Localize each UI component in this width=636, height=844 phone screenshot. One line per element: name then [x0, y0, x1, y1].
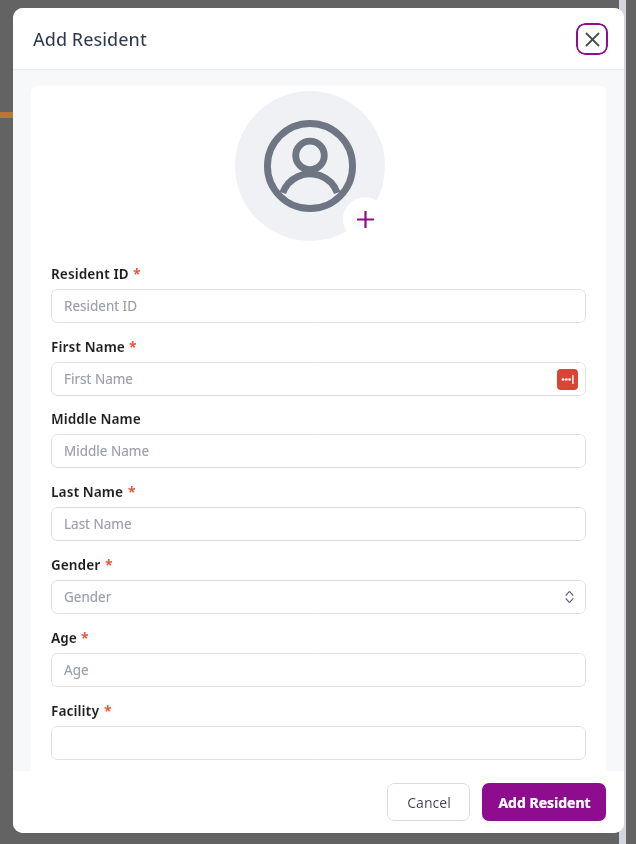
button[interactable]: Gender — [51, 580, 586, 614]
staticText: * — [81, 628, 89, 647]
button[interactable]: Cancel — [387, 783, 470, 821]
staticText: First Name — [51, 338, 125, 356]
button[interactable]: Close — [576, 23, 608, 55]
staticText: Last Name — [51, 483, 124, 501]
staticText: Resident ID — [64, 297, 138, 315]
staticText: Add Resident — [498, 793, 591, 812]
button[interactable]: Add Resident — [482, 783, 606, 821]
button[interactable]: Resident ID — [51, 289, 586, 323]
staticText: * — [133, 264, 141, 283]
button[interactable]: Profile photo — [235, 91, 385, 241]
staticText: * — [104, 701, 112, 720]
staticText: Last Name — [64, 515, 132, 533]
staticText: Add Resident — [33, 27, 147, 52]
button[interactable]: Add photo — [343, 197, 387, 241]
button[interactable]: Middle Name — [51, 434, 586, 468]
staticText: * — [129, 337, 137, 356]
staticText: Middle Name — [64, 442, 150, 460]
staticText: First Name — [64, 370, 133, 388]
staticText: Resident ID — [51, 265, 129, 283]
staticText: * — [105, 555, 113, 574]
button[interactable] — [51, 726, 586, 760]
staticText: Gender — [51, 556, 101, 574]
button[interactable]: First Name — [51, 362, 586, 396]
staticText: Age — [64, 661, 89, 679]
button[interactable]: Last Name — [51, 507, 586, 541]
staticText: * — [128, 482, 136, 501]
staticText: Age — [51, 629, 77, 647]
button[interactable]: Age — [51, 653, 586, 687]
staticText: Facility — [51, 702, 100, 720]
staticText: Middle Name — [51, 410, 141, 428]
staticText: Cancel — [407, 793, 451, 812]
staticText: Gender — [64, 588, 112, 606]
